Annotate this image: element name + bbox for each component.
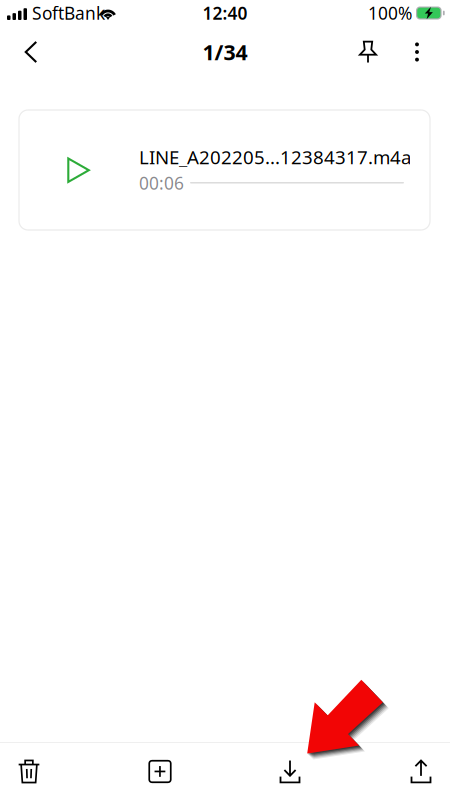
staticText: 1/34 bbox=[202, 38, 247, 66]
button[interactable]: Save bbox=[254, 743, 326, 800]
staticText: 12:40 bbox=[202, 1, 247, 24]
button[interactable]: Back bbox=[8, 28, 54, 76]
staticText: LINE_A202205...12384317.m4a bbox=[139, 145, 411, 169]
button[interactable]: Delete bbox=[0, 743, 65, 800]
button[interactable]: LINE_A202205...12384317.m4a bbox=[19, 110, 430, 230]
button[interactable]: Pin bbox=[345, 28, 391, 76]
button[interactable]: Add to Keep bbox=[124, 743, 196, 800]
button[interactable]: More options bbox=[396, 28, 438, 76]
button[interactable]: Share bbox=[385, 743, 450, 800]
staticText: 100% bbox=[368, 1, 412, 24]
staticText: 00:06 bbox=[139, 171, 184, 194]
staticText: SoftBank bbox=[32, 1, 105, 24]
